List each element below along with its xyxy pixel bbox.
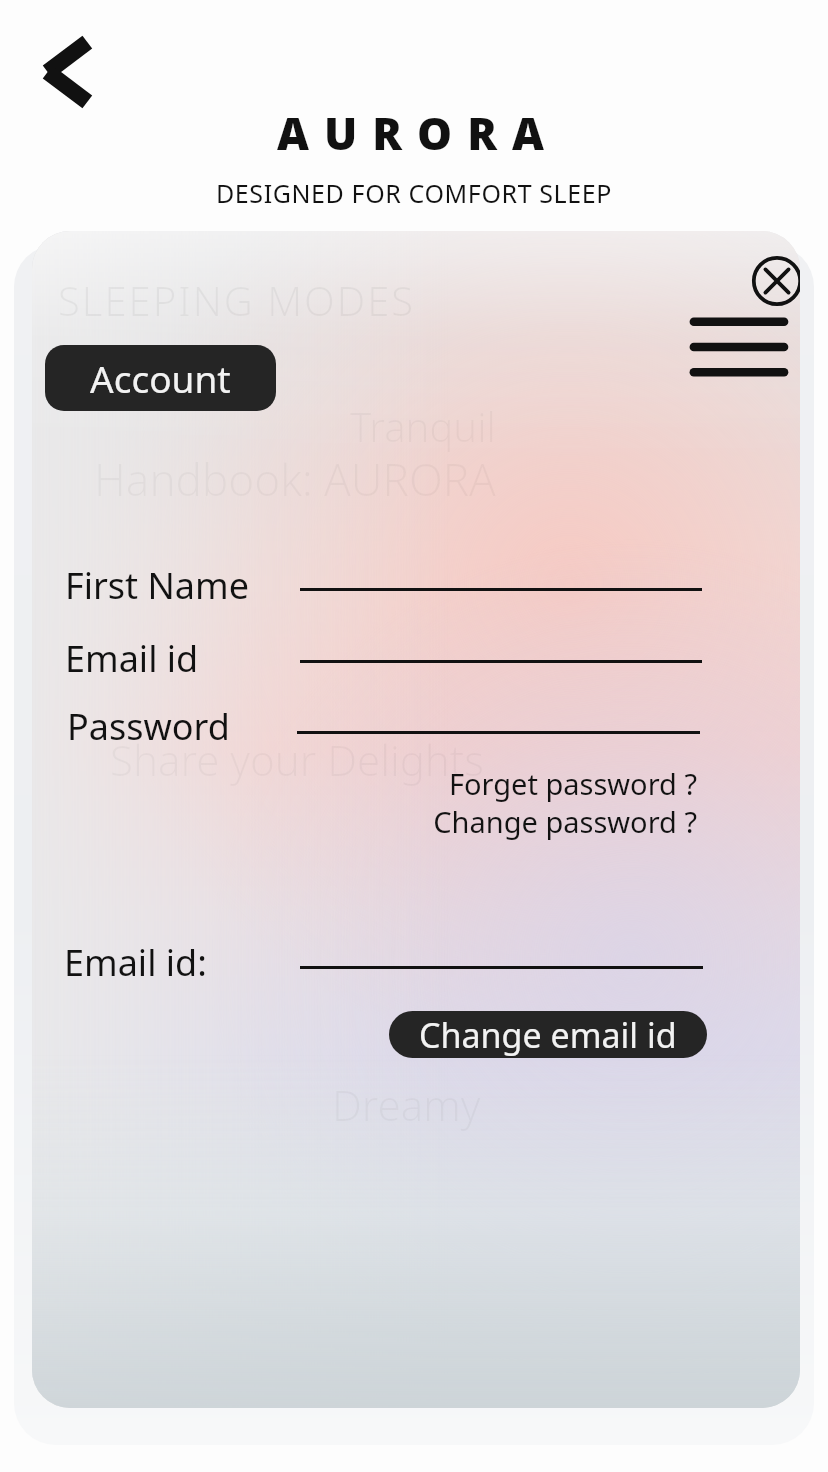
- staticText: Password: [67, 702, 230, 751]
- staticText: Handbook: AURORA: [94, 449, 496, 509]
- button[interactable]: Change password ?: [397, 802, 697, 1408]
- staticText: Forget password ?: [397, 764, 697, 1408]
- staticText: Email id: [65, 634, 199, 683]
- staticText: DESIGNED FOR COMFORT SLEEP: [0, 176, 828, 210]
- staticText: SLEEPING MODES: [58, 273, 416, 327]
- button[interactable]: Forget password ?: [397, 764, 697, 1408]
- button[interactable]: Close: [748, 252, 800, 310]
- staticText: Email id:: [64, 938, 207, 987]
- staticText: Change password ?: [397, 802, 697, 1408]
- staticText: AURORA: [4, 103, 828, 163]
- staticText: First Name: [65, 561, 249, 610]
- staticText: Account: [90, 353, 231, 403]
- staticText: Change email id: [419, 1012, 677, 1058]
- staticText: Share your Delights: [110, 731, 484, 788]
- staticText: Tranquil: [350, 399, 496, 453]
- button[interactable]: Menu: [690, 313, 786, 381]
- button[interactable]: Account: [45, 345, 276, 411]
- button[interactable]: Change email id: [389, 1011, 707, 1058]
- button[interactable]: Back: [34, 38, 96, 106]
